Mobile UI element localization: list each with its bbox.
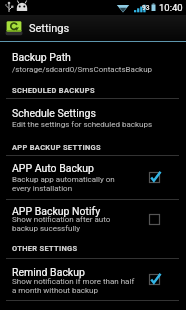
button[interactable]: APP Auto Backup xyxy=(12,162,135,174)
staticText: APP Backup Notify xyxy=(12,205,101,217)
staticText: Schedule Settings xyxy=(12,107,96,119)
button[interactable]: Checked xyxy=(149,172,160,183)
button[interactable]: /storage/sdcard0/SmsContactsBackup xyxy=(12,65,182,74)
button[interactable]: Unchecked xyxy=(149,214,160,225)
staticText: APP BACKUP SETTINGS xyxy=(12,143,101,152)
button[interactable]: SCHEDULED BACKUPS xyxy=(12,86,95,95)
staticText: Edit the settings for scheduled backups xyxy=(12,120,153,129)
button[interactable]: Show notification if more than half a mo… xyxy=(12,277,135,295)
staticText: APP Auto Backup xyxy=(12,162,94,174)
button[interactable]: Backup app automatically on every instal… xyxy=(12,175,135,193)
staticText: 10:40 xyxy=(159,2,183,13)
staticText: Show notification after auto backup suce… xyxy=(12,215,135,233)
button[interactable]: Remind Backup xyxy=(12,266,135,278)
button[interactable]: Checked xyxy=(149,274,160,285)
button[interactable]: Schedule Settings xyxy=(12,107,182,119)
staticText: Backup Path xyxy=(12,51,71,63)
staticText: Backup app automatically on every instal… xyxy=(12,175,135,193)
button[interactable]: Backup Path xyxy=(12,51,182,63)
button[interactable]: Settings xyxy=(0,15,186,41)
staticText: 93 xyxy=(142,4,150,12)
staticText: Show notification if more than half a mo… xyxy=(12,277,135,295)
staticText: Remind Backup xyxy=(12,266,85,278)
button[interactable]: OTHER SETTINGS xyxy=(12,244,78,253)
staticText: SCHEDULED BACKUPS xyxy=(12,86,95,95)
button[interactable]: Show notification after auto backup suce… xyxy=(12,215,135,233)
button[interactable]: APP BACKUP SETTINGS xyxy=(12,143,101,152)
staticText: Settings xyxy=(29,22,70,35)
staticText: /storage/sdcard0/SmsContactsBackup xyxy=(12,65,153,74)
staticText: OTHER SETTINGS xyxy=(12,244,78,253)
button[interactable]: Edit the settings for scheduled backups xyxy=(12,120,182,129)
button[interactable]: APP Backup Notify xyxy=(12,205,135,217)
